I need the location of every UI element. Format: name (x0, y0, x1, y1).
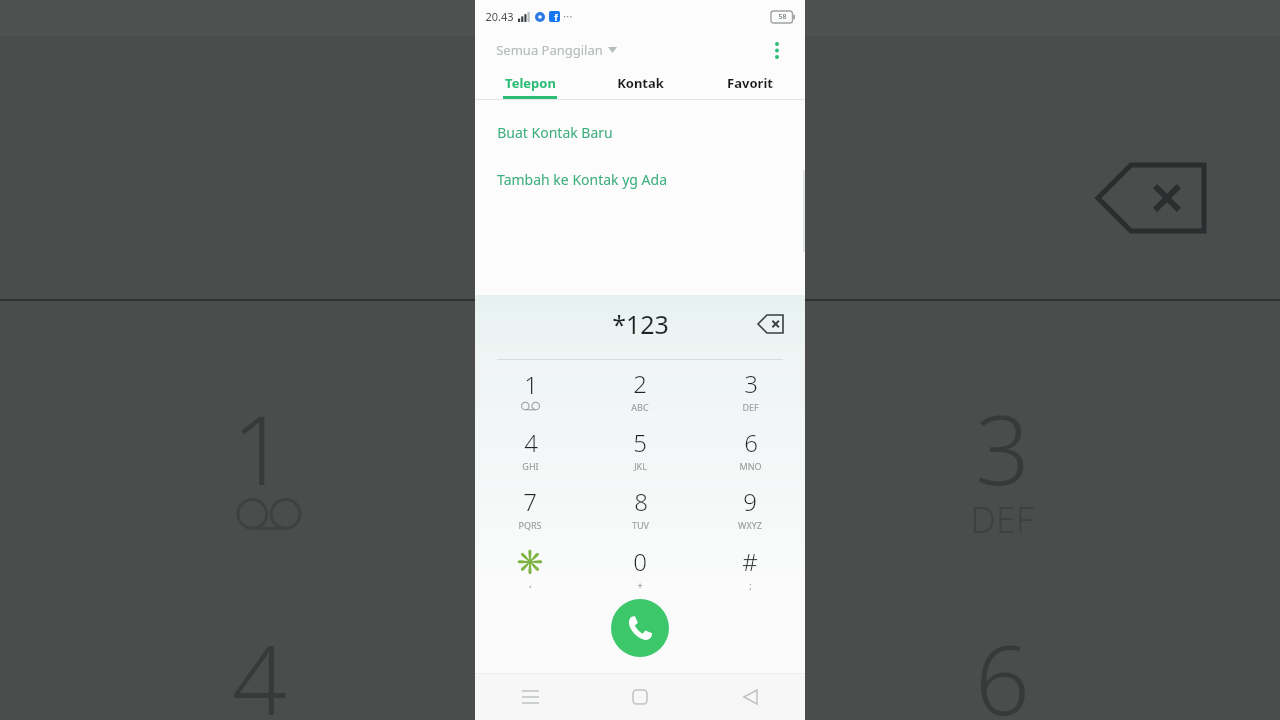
staticText: TUV (632, 519, 649, 531)
button[interactable]: 1 (475, 360, 585, 419)
button[interactable]: 5 (585, 419, 695, 478)
button[interactable]: Favorit (695, 66, 805, 99)
button[interactable]: Tambah ke Kontak yg Ada (475, 163, 805, 195)
staticText: Semua Panggilan (496, 41, 603, 59)
staticText: JKL (634, 460, 647, 472)
button[interactable]: 0 (585, 538, 695, 598)
staticText: ABC (631, 401, 649, 413)
staticText: 20.43 (485, 9, 514, 24)
staticText: 4 (524, 426, 538, 459)
staticText: DEF (742, 401, 759, 413)
staticText: MNO (739, 460, 762, 472)
button[interactable]: 6 (695, 419, 805, 478)
button[interactable]: 4 (475, 419, 585, 478)
staticText: # (742, 545, 758, 578)
staticText: ✳ (515, 548, 545, 576)
staticText: 58 (778, 12, 787, 22)
staticText: Tambah ke Kontak yg Ada (497, 170, 667, 189)
button[interactable]: Telepon (475, 66, 585, 99)
staticText: WXYZ (738, 519, 762, 531)
staticText: 1 (232, 382, 287, 513)
button[interactable]: Call (611, 599, 669, 657)
button[interactable]: # (695, 538, 805, 598)
button[interactable]: Semua Panggilan (496, 41, 617, 59)
staticText: *123 (612, 307, 669, 341)
staticText: 3 (744, 367, 758, 400)
button[interactable]: ✳ (475, 538, 585, 598)
staticText: 6 (744, 426, 758, 459)
staticText: 9 (743, 485, 757, 518)
staticText: ⋯ (563, 11, 573, 23)
button[interactable]: Recent apps (475, 673, 585, 720)
staticText: 4 (232, 612, 287, 720)
staticText: 8 (634, 485, 648, 518)
staticText: Favorit (727, 74, 773, 92)
button[interactable]: Home (585, 673, 695, 720)
button[interactable]: 3 (695, 360, 805, 419)
staticText: , (529, 577, 532, 589)
staticText: Kontak (617, 74, 664, 92)
staticText: f (554, 11, 558, 22)
staticText: 1 (524, 368, 538, 401)
staticText: 2 (633, 367, 647, 400)
staticText: PQRS (518, 519, 542, 531)
button[interactable]: Back (695, 673, 805, 720)
button[interactable]: 2 (585, 360, 695, 419)
staticText: 6 (975, 612, 1030, 720)
button[interactable]: Buat Kontak Baru (475, 116, 805, 148)
button[interactable]: Kontak (585, 66, 695, 99)
staticText: 3 (975, 382, 1030, 513)
staticText: Telepon (505, 74, 556, 92)
staticText: 0 (633, 545, 647, 578)
button[interactable]: 9 (695, 478, 805, 538)
button[interactable]: More options (763, 36, 791, 64)
staticText: + (637, 579, 643, 591)
staticText: 5 (633, 426, 647, 459)
staticText: DEF (970, 495, 1034, 544)
button[interactable]: 8 (585, 478, 695, 538)
button[interactable]: Backspace (751, 304, 791, 344)
staticText: Buat Kontak Baru (497, 123, 613, 142)
button[interactable]: 7 (475, 478, 585, 538)
staticText: ; (749, 579, 752, 591)
staticText: 7 (523, 485, 537, 518)
staticText: GHI (522, 460, 539, 472)
